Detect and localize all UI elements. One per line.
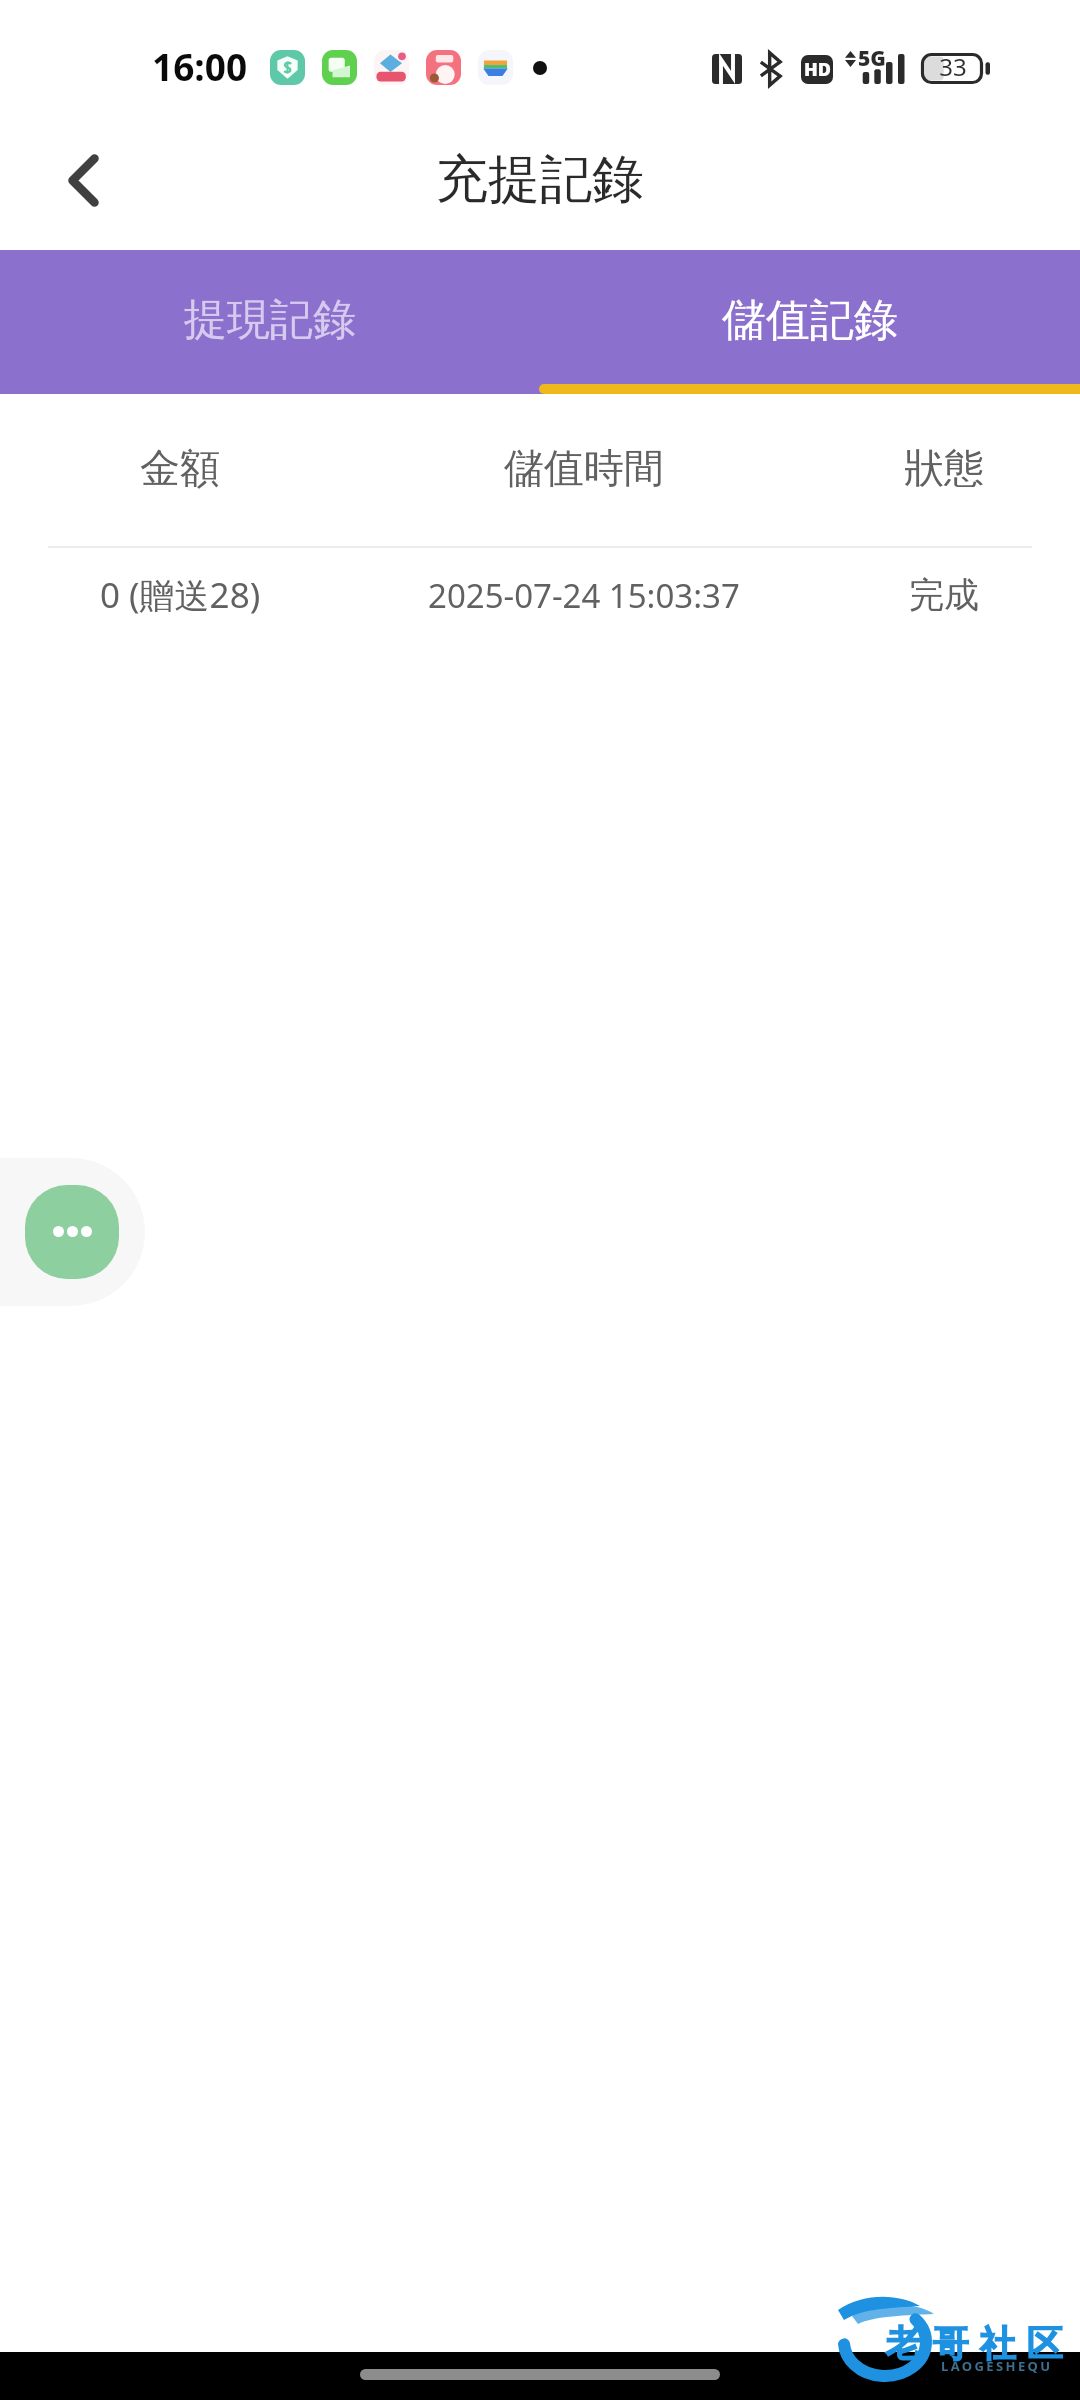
staticText: HD [804, 57, 831, 82]
staticText: 儲值記錄 [722, 293, 898, 348]
button[interactable]: 0 (贈送28) [0, 548, 1080, 656]
button[interactable]: 提現記錄 [0, 250, 540, 394]
staticText: 儲值時間 [504, 443, 664, 493]
staticText: LAOGESHEQU [941, 2357, 1053, 2375]
button[interactable]: Back [38, 143, 128, 217]
button[interactable]: 儲值記錄 [540, 250, 1080, 394]
staticText: 充提記錄 [436, 147, 644, 213]
staticText: 老哥社区 [880, 2321, 1068, 2366]
staticText: 提現記錄 [184, 293, 356, 347]
button[interactable]: More options [25, 1185, 119, 1279]
staticText: 金額 [140, 443, 220, 493]
staticText: 完成 [909, 573, 979, 617]
staticText: 狀態 [904, 443, 984, 493]
staticText: 5G [858, 44, 886, 73]
staticText: 16:00 [152, 41, 248, 91]
staticText: 0 (贈送28) [100, 571, 261, 619]
staticText: 33 [922, 50, 984, 81]
staticText: 2025-07-24 15:03:37 [428, 573, 740, 618]
